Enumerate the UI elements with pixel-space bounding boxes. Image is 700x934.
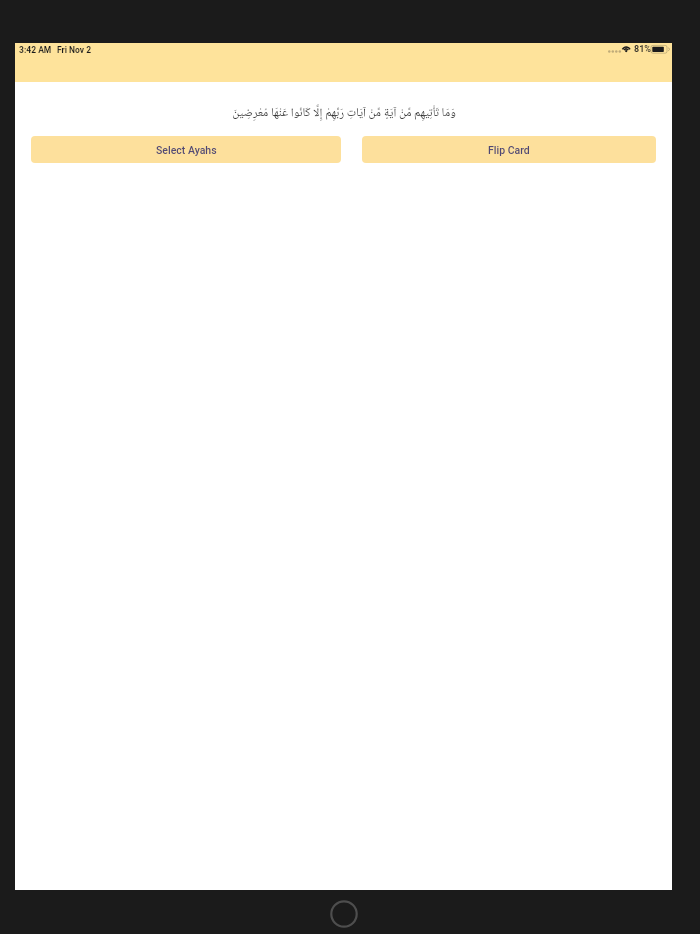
staticText: Flip Card xyxy=(488,144,530,156)
staticText: وَمَا تَأْتِيهِم مِّنْ آيَةٍ مِّنْ آيَات… xyxy=(232,105,456,121)
staticText: Fri Nov 2 xyxy=(57,45,92,55)
button[interactable]: Select Ayahs xyxy=(31,136,341,163)
staticText: Select Ayahs xyxy=(156,144,217,156)
staticText: 81% xyxy=(634,44,651,55)
button[interactable]: Flip Card xyxy=(362,136,656,163)
staticText: 3:42 AM xyxy=(19,45,52,55)
other: Home xyxy=(330,900,358,928)
